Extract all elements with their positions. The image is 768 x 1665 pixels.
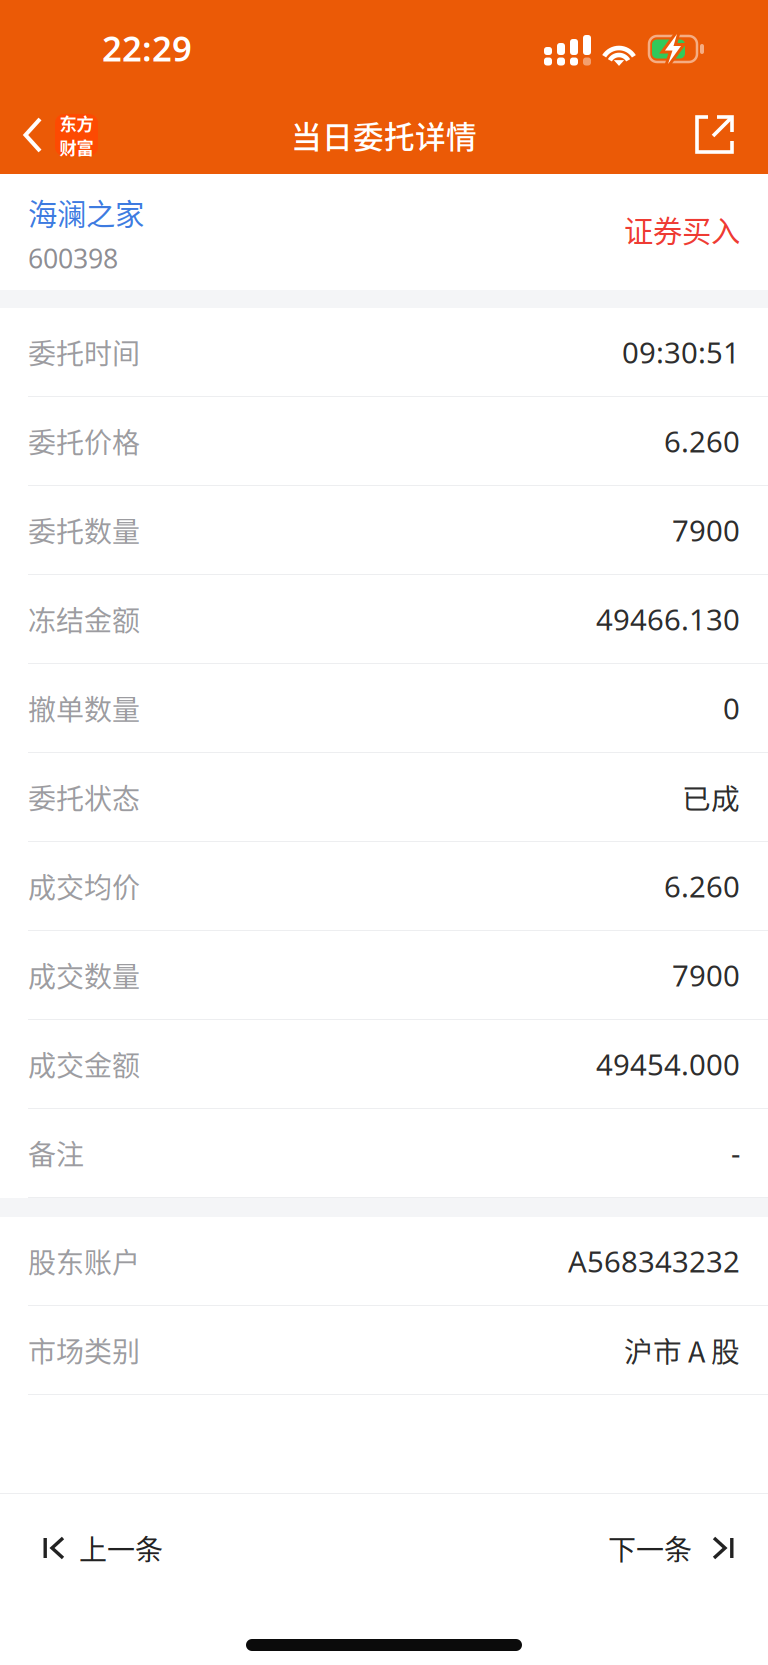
staticText: 当日委托详情 xyxy=(291,113,477,157)
staticText: 600398 xyxy=(28,240,118,276)
staticText: 上一条 xyxy=(79,1528,163,1568)
staticText: 委托数量 xyxy=(28,510,140,550)
staticText: 冻结金额 xyxy=(28,599,140,639)
staticText: 市场类别 xyxy=(28,1330,140,1370)
button[interactable]: 上一条 xyxy=(0,1503,163,1593)
staticText: 沪市 A 股 xyxy=(624,1329,740,1371)
staticText: 已成 xyxy=(682,776,740,818)
staticText: 委托状态 xyxy=(28,777,140,817)
staticText: 0 xyxy=(723,688,740,727)
staticText: 备注 xyxy=(28,1133,84,1173)
staticText: 成交均价 xyxy=(28,866,140,906)
staticText: 股东账户 xyxy=(28,1241,140,1281)
staticText: 下一条 xyxy=(608,1528,692,1568)
staticText: 22:29 xyxy=(102,25,192,71)
staticText: 海澜之家 xyxy=(28,191,144,233)
staticText: 7900 xyxy=(672,955,740,994)
staticText: 6.260 xyxy=(664,421,740,460)
staticText: 成交数量 xyxy=(28,955,140,995)
staticText: 49466.130 xyxy=(596,599,740,638)
staticText: - xyxy=(731,1133,740,1172)
staticText: 撤单数量 xyxy=(28,688,140,728)
staticText: 6.260 xyxy=(664,866,740,905)
staticText: 成交金额 xyxy=(28,1044,140,1084)
button[interactable]: 下一条 xyxy=(608,1503,768,1593)
staticText: 证券买入 xyxy=(624,208,740,250)
staticText: 49454.000 xyxy=(596,1044,740,1083)
staticText: 09:30:51 xyxy=(622,332,740,371)
staticText: 委托时间 xyxy=(28,332,140,372)
staticText: A568343232 xyxy=(568,1241,740,1280)
staticText: 委托价格 xyxy=(28,421,140,461)
staticText: 东方 xyxy=(59,110,93,135)
button[interactable]: Share xyxy=(694,106,768,164)
staticText: 7900 xyxy=(672,510,740,549)
staticText: 财富 xyxy=(59,134,93,160)
button[interactable]: 东方 xyxy=(0,106,98,164)
